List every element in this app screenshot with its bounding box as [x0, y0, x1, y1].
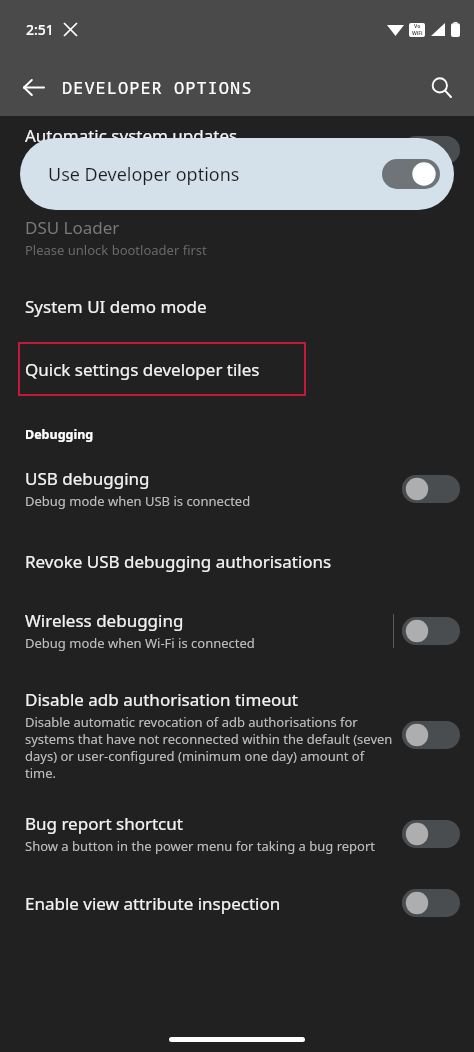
button[interactable]: Search	[420, 66, 462, 108]
staticText: Disable adb authorisation timeout	[25, 688, 298, 711]
staticText: DSU Loader	[25, 216, 120, 239]
staticText: Quick settings developer tiles	[25, 358, 260, 381]
button[interactable]: Use Developer options toggle	[382, 159, 440, 189]
button[interactable]: Toggle	[402, 617, 460, 645]
button[interactable]: Disable adb authorisation timeout	[0, 688, 474, 782]
staticText: Debug mode when USB is connected	[25, 492, 251, 510]
staticText: USB debugging	[25, 467, 150, 490]
staticText: Wireless debugging	[25, 609, 184, 632]
button[interactable]: Revoke USB debugging authorisations	[0, 550, 474, 573]
staticText: Enable view attribute inspection	[25, 892, 281, 915]
button[interactable]: USB debugging	[0, 467, 474, 510]
staticText: System UI demo mode	[25, 295, 207, 318]
button[interactable]: Toggle	[402, 136, 460, 164]
staticText: DEVELOPER OPTIONS	[62, 76, 253, 99]
button[interactable]: Toggle	[402, 721, 460, 749]
staticText: 2:51	[26, 20, 54, 39]
button[interactable]: Automatic system updates	[0, 124, 474, 167]
button[interactable]: Back	[12, 66, 54, 108]
staticText: Use Developer options	[48, 162, 382, 187]
button[interactable]: Toggle	[402, 475, 460, 503]
button[interactable]: Bug report shortcut	[0, 812, 474, 855]
button[interactable]: DSU Loader	[0, 216, 474, 259]
staticText: Please unlock bootloader first	[25, 241, 207, 259]
staticText: Debug mode when Wi-Fi is connected	[25, 634, 255, 652]
button[interactable]: System UI demo mode	[0, 295, 474, 318]
staticText: Show a button in the power menu for taki…	[25, 837, 375, 855]
staticText: Automatic system updates	[25, 124, 238, 147]
staticText: Debugging	[25, 426, 94, 443]
staticText: Disable automatic revocation of adb auth…	[25, 713, 394, 782]
button[interactable]: Use Developer options	[20, 138, 454, 210]
button[interactable]: Wireless debugging	[0, 609, 474, 652]
staticText: Revoke USB debugging authorisations	[25, 550, 332, 573]
button[interactable]: Toggle	[402, 820, 460, 848]
staticText: WiFi	[412, 30, 423, 37]
button[interactable]: Quick settings developer tiles	[18, 342, 306, 396]
staticText: Vo	[414, 23, 421, 30]
button[interactable]: Enable view attribute inspection	[0, 889, 474, 917]
staticText: Apply updates when device restarts	[25, 149, 242, 167]
button[interactable]: Toggle	[402, 889, 460, 917]
staticText: Bug report shortcut	[25, 812, 183, 835]
